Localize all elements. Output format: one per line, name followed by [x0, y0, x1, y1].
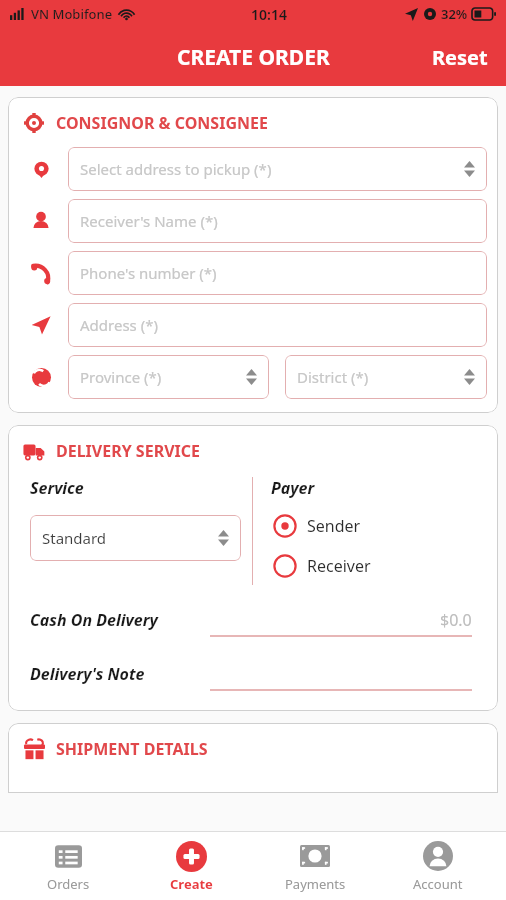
staticText: Receiver's Name (*) [80, 211, 218, 231]
button[interactable]: Receiver [271, 551, 373, 581]
staticText: Select address to pickup (*) [80, 159, 272, 179]
staticText: Cash On Delivery [30, 609, 158, 631]
staticText: District (*) [297, 367, 369, 387]
staticText: Phone's number (*) [80, 263, 217, 283]
button[interactable]: Reset [414, 36, 506, 79]
staticText: 10:14 [251, 5, 287, 24]
button[interactable]: Sender [271, 511, 363, 541]
button[interactable]: District (*) [285, 355, 487, 399]
button[interactable]: Receiver's Name (*) [68, 199, 487, 243]
staticText: CONSIGNOR & CONSIGNEE [56, 112, 268, 134]
staticText: DELIVERY SERVICE [56, 440, 201, 462]
staticText: Payer [271, 477, 315, 499]
button[interactable]: Standard [30, 515, 241, 561]
button[interactable] [210, 657, 472, 691]
staticText: Service [30, 477, 84, 499]
staticText: SHIPMENT DETAILS [56, 738, 208, 760]
button[interactable]: Account [383, 835, 493, 898]
staticText: VN Mobifone [31, 5, 113, 23]
staticText: Payments [285, 875, 346, 893]
staticText: Sender [307, 515, 361, 537]
staticText: Delivery's Note [30, 663, 145, 685]
button[interactable]: Province (*) [68, 355, 269, 399]
staticText: Create [170, 875, 213, 893]
staticText: Orders [47, 875, 90, 893]
other: Section [24, 113, 44, 133]
staticText: Standard [42, 528, 107, 548]
button[interactable]: Orders [13, 835, 123, 898]
button[interactable]: $0.0 [210, 603, 472, 637]
staticText: Account [413, 875, 463, 893]
button[interactable]: Phone's number (*) [68, 251, 487, 295]
staticText: 32% [441, 5, 468, 23]
staticText: $0.0 [440, 609, 472, 631]
staticText: Address (*) [80, 315, 158, 335]
button[interactable]: Payments [260, 835, 370, 898]
staticText: CREATE ORDER [177, 43, 330, 72]
staticText: Receiver [307, 555, 371, 577]
staticText: Province (*) [80, 367, 162, 387]
button[interactable]: Select address to pickup (*) [68, 147, 487, 191]
button[interactable]: CREATE ORDER [171, 37, 336, 78]
button[interactable]: Address (*) [68, 303, 487, 347]
staticText: Reset [432, 44, 488, 71]
button[interactable]: Create [136, 835, 246, 898]
